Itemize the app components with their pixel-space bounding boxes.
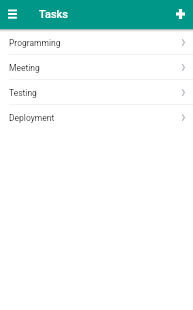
button[interactable]: Deployment xyxy=(0,105,193,130)
staticText: Programming xyxy=(9,38,61,48)
button[interactable]: Add task xyxy=(167,1,193,27)
staticText: Deployment xyxy=(9,113,55,123)
button[interactable]: Meeting xyxy=(0,55,193,80)
staticText: Tasks xyxy=(39,8,68,21)
staticText: Testing xyxy=(9,88,37,98)
button[interactable]: Testing xyxy=(0,80,193,105)
staticText: Meeting xyxy=(9,63,40,73)
button[interactable]: Open navigation menu xyxy=(0,3,24,27)
button[interactable]: Programming xyxy=(0,30,193,55)
